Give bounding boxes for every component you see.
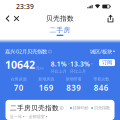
button[interactable]: 关闭 [12, 13, 21, 24]
staticText: 在售房源 [11, 77, 27, 82]
staticText: 846 [94, 82, 109, 93]
button[interactable]: 分享 [105, 13, 116, 24]
staticText: 挂牌均价 [73, 105, 89, 110]
staticText: 13.3% [70, 60, 90, 68]
staticText: 二手房贝壳指数 [10, 104, 59, 112]
staticText: 贝壳指数 [46, 14, 74, 23]
staticText: 新增房源 [38, 77, 54, 82]
staticText: 环比上月 [70, 69, 86, 74]
staticText: 订阅 [102, 59, 112, 66]
staticText: 嘉兴·02月贝壳指数 [5, 48, 47, 55]
staticText: 环比上月 [51, 69, 67, 74]
staticText: 元/㎡ [36, 65, 45, 70]
button[interactable]: 近一年 [10, 114, 25, 119]
staticText: 839 [66, 82, 81, 93]
staticText: 8.1% [51, 60, 67, 68]
staticText: 贝壳指数 [94, 105, 110, 110]
button[interactable]: 返回 [3, 13, 12, 24]
button[interactable]: 全部居室 [29, 114, 47, 119]
staticText: 城区/板块 [90, 48, 112, 55]
staticText: 10642 [5, 58, 35, 72]
staticText: 带看次数 [93, 77, 109, 82]
button[interactable]: 二手房 [40, 24, 80, 38]
staticText: 23:39 [16, 2, 34, 11]
staticText: 70 [14, 82, 24, 93]
staticText: 二手房 [49, 26, 70, 34]
staticText: 全部居室 [29, 114, 45, 119]
staticText: 近一年 [10, 114, 22, 119]
staticText: 新增带看 [66, 77, 82, 82]
staticText: 169 [39, 82, 54, 93]
button[interactable]: 城区/板块 [90, 48, 115, 55]
button[interactable]: 订阅 [99, 59, 115, 66]
staticText: · [26, 114, 27, 119]
